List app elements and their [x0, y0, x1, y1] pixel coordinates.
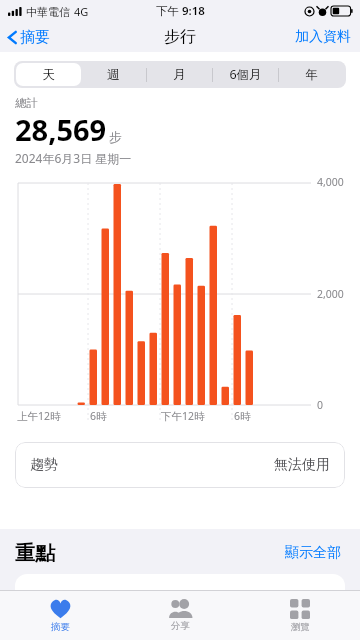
staticText: 年 [305, 67, 318, 83]
staticText: 6時 [234, 409, 251, 423]
staticText: 中華電信 [26, 5, 70, 19]
button[interactable]: 月 [146, 63, 212, 86]
staticText: 0 [317, 398, 324, 412]
staticText: 摘要 [51, 621, 70, 633]
staticText: 月 [173, 67, 186, 83]
button[interactable]: 摘要 [0, 25, 58, 50]
staticText: 摘要 [20, 28, 50, 47]
staticText: 無法使用 [274, 456, 330, 474]
staticText: 6時 [90, 409, 107, 423]
staticText: 總計 [15, 96, 38, 110]
staticText: 天 [42, 67, 55, 83]
staticText: 4,000 [317, 175, 344, 189]
staticText: 分享 [171, 620, 190, 632]
button[interactable]: 趨勢 [15, 442, 345, 488]
button[interactable]: 6個月 [212, 63, 278, 86]
button[interactable]: 年 [278, 63, 344, 86]
button[interactable]: 顯示全部 [281, 540, 345, 566]
staticText: 下午12時 [161, 409, 205, 423]
button[interactable]: 週 [81, 63, 146, 86]
staticText: 瀏覽 [291, 621, 310, 633]
staticText: 下午 9:18 [156, 3, 205, 19]
button[interactable]: 天 [16, 63, 81, 86]
staticText: 週 [107, 67, 120, 83]
staticText: 趨勢 [30, 456, 58, 474]
button[interactable]: Browse [240, 591, 360, 640]
staticText: 4G [74, 4, 89, 19]
staticText: 2,000 [317, 287, 344, 301]
staticText: 上午12時 [17, 409, 61, 423]
button[interactable]: 加入資料 [286, 24, 360, 50]
staticText: 2024年6月3日 星期一 [15, 150, 132, 166]
staticText: 重點 [15, 541, 55, 566]
staticText: 步 [109, 129, 122, 145]
button[interactable]: Summary [0, 591, 120, 640]
staticText: 6個月 [229, 66, 262, 83]
staticText: 步行 [164, 27, 196, 47]
button[interactable]: Sharing [120, 591, 240, 640]
staticText: 28,569 [15, 110, 107, 149]
